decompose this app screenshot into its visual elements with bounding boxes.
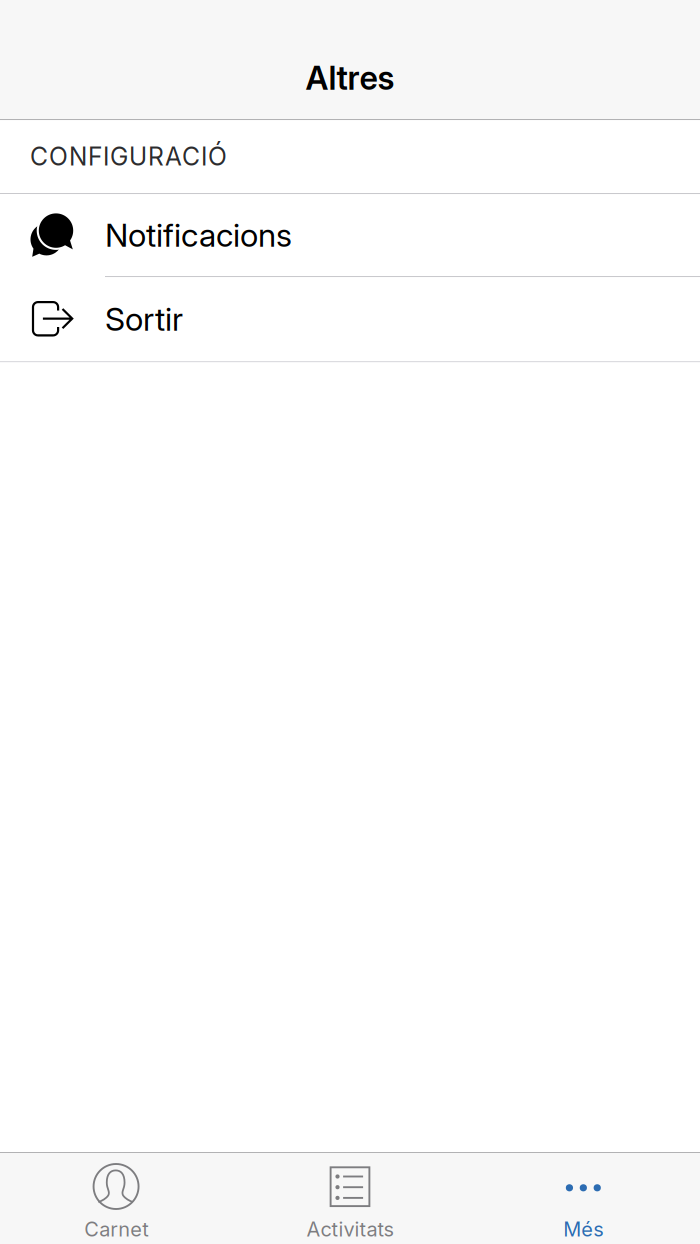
- button[interactable]: Activitats: [233, 1153, 467, 1244]
- button[interactable]: Sortir: [0, 277, 700, 361]
- staticText: CONFIGURACIÓ: [30, 142, 227, 171]
- button[interactable]: Més: [467, 1153, 700, 1244]
- staticText: Més: [563, 1217, 603, 1241]
- staticText: Sortir: [105, 300, 183, 338]
- button[interactable]: Carnet: [0, 1153, 233, 1244]
- button[interactable]: Notificacions: [0, 194, 700, 276]
- staticText: Altres: [305, 58, 394, 97]
- staticText: Carnet: [84, 1217, 149, 1241]
- staticText: Activitats: [306, 1217, 393, 1241]
- staticText: Notificacions: [105, 216, 292, 254]
